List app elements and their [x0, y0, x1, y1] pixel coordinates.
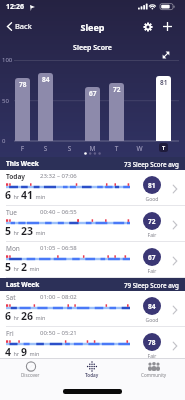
staticText: Mon	[6, 244, 20, 253]
staticText: 73 Sleep Score avg	[124, 160, 179, 168]
staticText: Sat	[6, 293, 16, 302]
staticText: min	[34, 193, 46, 200]
staticText: 41	[21, 188, 34, 202]
staticText: 5	[5, 260, 12, 274]
staticText: Sleep Score	[0, 43, 185, 53]
staticText: 67	[148, 253, 156, 262]
staticText: 81	[148, 181, 156, 190]
button[interactable]	[160, 49, 172, 61]
staticText: min	[28, 350, 40, 357]
staticText: Tue	[6, 208, 17, 217]
staticText: 12:26	[6, 2, 24, 12]
staticText: S	[62, 144, 77, 153]
button[interactable]: Tue	[0, 206, 185, 242]
staticText: 5	[5, 224, 12, 238]
staticText: Last Week	[6, 280, 40, 289]
staticText: 2	[21, 260, 28, 274]
staticText: Community	[141, 372, 167, 378]
staticText: 23:32 – 07:06	[40, 172, 77, 180]
staticText: 84	[148, 302, 156, 311]
button[interactable]: Fri	[0, 327, 185, 363]
staticText: Today	[6, 172, 26, 181]
staticText: Good	[138, 317, 166, 324]
staticText: 00:40 – 06:55	[40, 208, 77, 216]
staticText: Fair	[138, 232, 166, 239]
staticText: Today	[85, 372, 99, 378]
staticText: 67	[89, 89, 97, 98]
staticText: 4	[5, 345, 12, 359]
staticText: hr	[12, 314, 21, 321]
button[interactable]: Mon	[0, 242, 185, 278]
staticText: min	[28, 265, 40, 272]
staticText: Good	[138, 196, 166, 203]
staticText: 9	[21, 345, 28, 359]
staticText: 79 Sleep Score avg	[124, 281, 179, 289]
staticText: min	[34, 229, 46, 236]
staticText: This Week	[6, 159, 39, 168]
staticText: S	[38, 144, 53, 153]
staticText: Sleep	[0, 21, 185, 33]
button[interactable]: Discover	[0, 361, 61, 400]
staticText: Fair	[138, 268, 166, 275]
staticText: 01:05 – 06:58	[40, 244, 77, 252]
staticText: 6	[5, 309, 12, 323]
staticText: M	[85, 144, 100, 153]
staticText: 26	[21, 309, 34, 323]
staticText: 78	[148, 338, 156, 347]
staticText: 6	[5, 188, 12, 202]
staticText: hr	[12, 350, 21, 357]
staticText: min	[34, 314, 46, 321]
staticText: 72	[113, 85, 121, 94]
staticText: Discover	[21, 372, 40, 378]
staticText: T	[109, 144, 124, 153]
staticText: 100	[2, 56, 13, 64]
staticText: 23	[21, 224, 34, 238]
staticText: 81	[160, 78, 168, 87]
staticText: Fri	[6, 329, 14, 338]
staticText: 50	[2, 97, 9, 105]
staticText: 84	[42, 75, 50, 84]
button[interactable]: Today	[61, 361, 123, 400]
staticText: 01:00 – 08:02	[40, 293, 77, 301]
staticText: 78	[19, 80, 27, 89]
staticText: 0	[2, 137, 6, 145]
button[interactable]: Sat	[0, 291, 185, 327]
staticText: Back	[15, 21, 32, 31]
staticText: F	[15, 144, 30, 153]
staticText: hr	[12, 229, 21, 236]
button[interactable]: Community	[123, 361, 185, 400]
staticText: 00:50 – 05:21	[40, 329, 77, 337]
staticText: hr	[12, 193, 21, 200]
staticText: 72	[148, 217, 156, 226]
staticText: T	[162, 144, 166, 151]
button[interactable]: Back	[4, 19, 34, 33]
button[interactable]: Today	[0, 170, 185, 206]
staticText: Fair	[138, 353, 166, 360]
button[interactable]	[141, 20, 155, 34]
button[interactable]	[160, 19, 175, 34]
staticText: hr	[12, 265, 21, 272]
staticText: W	[132, 144, 147, 153]
